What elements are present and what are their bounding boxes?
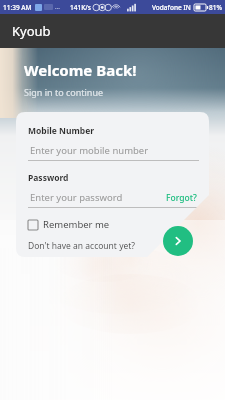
button[interactable]: Enter your mobile number	[28, 144, 199, 157]
staticText: Password	[28, 172, 69, 184]
staticText: Mobile Number	[28, 125, 95, 137]
staticText: Welcome Back!	[24, 60, 137, 80]
staticText: Don't have an account yet?	[28, 240, 136, 252]
button[interactable]: Remember me	[28, 218, 110, 231]
staticText: Remember me	[43, 218, 110, 231]
staticText: ...	[55, 3, 60, 11]
staticText: 141K/s	[70, 3, 91, 12]
staticText: Enter your password	[30, 191, 166, 204]
button[interactable]: Sign in	[163, 226, 193, 256]
staticText: 81%	[209, 3, 222, 12]
staticText: Sign in to continue	[24, 86, 104, 98]
button[interactable]: Forgot?	[166, 192, 199, 204]
staticText: 11:39 AM	[3, 3, 32, 12]
staticText: Enter your mobile number	[30, 144, 199, 157]
staticText: Forgot?	[166, 192, 197, 204]
staticText: Kyoub	[12, 22, 51, 40]
button[interactable]: Enter your password	[28, 191, 199, 204]
staticText: Vodafone IN	[152, 3, 191, 12]
